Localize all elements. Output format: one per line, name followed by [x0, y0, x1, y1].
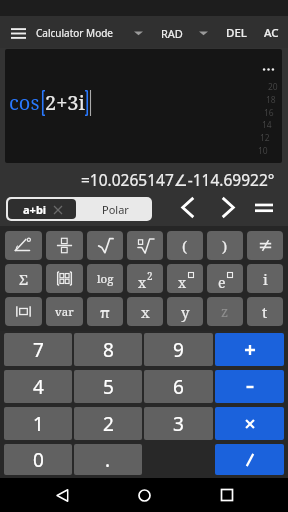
button[interactable]: 6 — [144, 370, 213, 403]
button[interactable]: ang — [5, 231, 42, 260]
staticText: Polar — [102, 202, 129, 217]
staticText: 0 — [33, 447, 44, 473]
staticText: 2 — [147, 269, 153, 283]
button[interactable]: 4 — [4, 370, 72, 403]
button[interactable]: π — [87, 297, 123, 326]
staticText: AC — [264, 25, 279, 41]
button[interactable]: 8 — [74, 333, 142, 366]
staticText: 4 — [33, 374, 44, 400]
staticText: log — [97, 271, 114, 287]
staticText: 6 — [173, 374, 184, 400]
button[interactable] — [215, 444, 284, 475]
staticText: var — [55, 304, 74, 320]
staticText: ) — [222, 236, 228, 256]
button[interactable]: 3 — [144, 407, 213, 440]
other: neq — [256, 236, 275, 255]
button[interactable] — [215, 370, 284, 403]
button[interactable]: 9 — [144, 333, 213, 366]
button[interactable]: x — [127, 297, 163, 326]
button[interactable]: Previous — [171, 190, 205, 224]
staticText: . — [105, 447, 111, 473]
staticText: 1 — [33, 411, 44, 437]
staticText: y — [181, 302, 190, 322]
staticText: x — [138, 273, 147, 292]
button[interactable]: e — [207, 264, 243, 293]
button[interactable]: log — [87, 264, 123, 293]
button[interactable]: 5 — [74, 370, 142, 403]
staticText: Calculator Mode — [36, 26, 113, 40]
other: abs — [14, 302, 33, 321]
staticText: 7 — [33, 337, 44, 363]
button[interactable]: 1 — [4, 407, 72, 440]
button[interactable]: Σ — [5, 264, 42, 293]
staticText: x — [141, 302, 150, 322]
button[interactable] — [215, 333, 284, 366]
staticText: z — [221, 302, 229, 321]
button[interactable]: x — [127, 264, 163, 293]
staticText: 5 — [103, 374, 114, 400]
button[interactable]: Equals — [247, 190, 281, 224]
other: matrix — [55, 269, 74, 288]
button[interactable]: Next — [211, 190, 245, 224]
button[interactable]: DEL — [226, 16, 247, 48]
staticText: DEL — [226, 25, 247, 41]
other: frac — [55, 236, 74, 255]
staticText: 3 — [173, 411, 184, 437]
button[interactable]: var — [46, 297, 83, 326]
staticText: 2 — [103, 411, 114, 437]
button[interactable]: More options — [257, 58, 279, 80]
staticText: 2+3i — [45, 89, 85, 116]
button[interactable]: Calculator Mode — [36, 16, 143, 48]
button[interactable]: t — [247, 297, 283, 326]
staticText: a+bi — [23, 202, 47, 217]
button[interactable] — [215, 407, 284, 440]
staticText: i — [263, 269, 268, 289]
staticText: ( — [182, 236, 188, 256]
staticText: x — [178, 273, 187, 292]
staticText: t — [262, 302, 268, 322]
button[interactable]: AC — [264, 16, 279, 48]
button[interactable]: i — [247, 264, 283, 293]
staticText: 12 — [260, 132, 270, 144]
button[interactable]: abs — [5, 297, 42, 326]
staticText: cos — [9, 89, 40, 116]
button[interactable]: ( — [167, 231, 203, 260]
other: ang — [14, 236, 33, 255]
button[interactable]: Back — [41, 478, 83, 512]
staticText: 14 — [262, 119, 272, 131]
staticText: π — [100, 302, 110, 322]
button[interactable]: Polar — [78, 197, 152, 221]
button[interactable]: frac — [46, 231, 83, 260]
staticText: e — [218, 273, 226, 292]
staticText: =10.0265147∠-114.69922° — [81, 169, 275, 190]
button[interactable]: 2 — [74, 407, 142, 440]
button[interactable]: RAD — [161, 16, 208, 48]
button[interactable]: z — [207, 297, 243, 326]
button[interactable]: matrix — [46, 264, 83, 293]
staticText: Σ — [19, 269, 29, 289]
other: nroot — [136, 236, 155, 255]
staticText: 20 — [268, 81, 278, 93]
button[interactable]: Recents — [206, 478, 248, 512]
staticText: 18 — [266, 94, 276, 106]
button[interactable]: 7 — [4, 333, 72, 366]
button[interactable]: a+bi — [8, 199, 76, 219]
staticText: 10 — [258, 145, 268, 157]
button[interactable]: y — [167, 297, 203, 326]
button[interactable]: Menu — [3, 17, 33, 47]
staticText: 9 — [173, 337, 184, 363]
other: sqrt — [96, 236, 115, 255]
button[interactable]: . — [74, 444, 142, 475]
button[interactable]: neq — [247, 231, 283, 260]
button[interactable]: nroot — [127, 231, 163, 260]
staticText: RAD — [161, 26, 183, 41]
button[interactable]: sqrt — [87, 231, 123, 260]
staticText: 16 — [264, 107, 274, 119]
button[interactable]: ) — [207, 231, 243, 260]
button[interactable]: Home — [123, 478, 165, 512]
staticText: 8 — [103, 337, 114, 363]
button[interactable]: x — [167, 264, 203, 293]
button[interactable]: 0 — [4, 444, 72, 475]
